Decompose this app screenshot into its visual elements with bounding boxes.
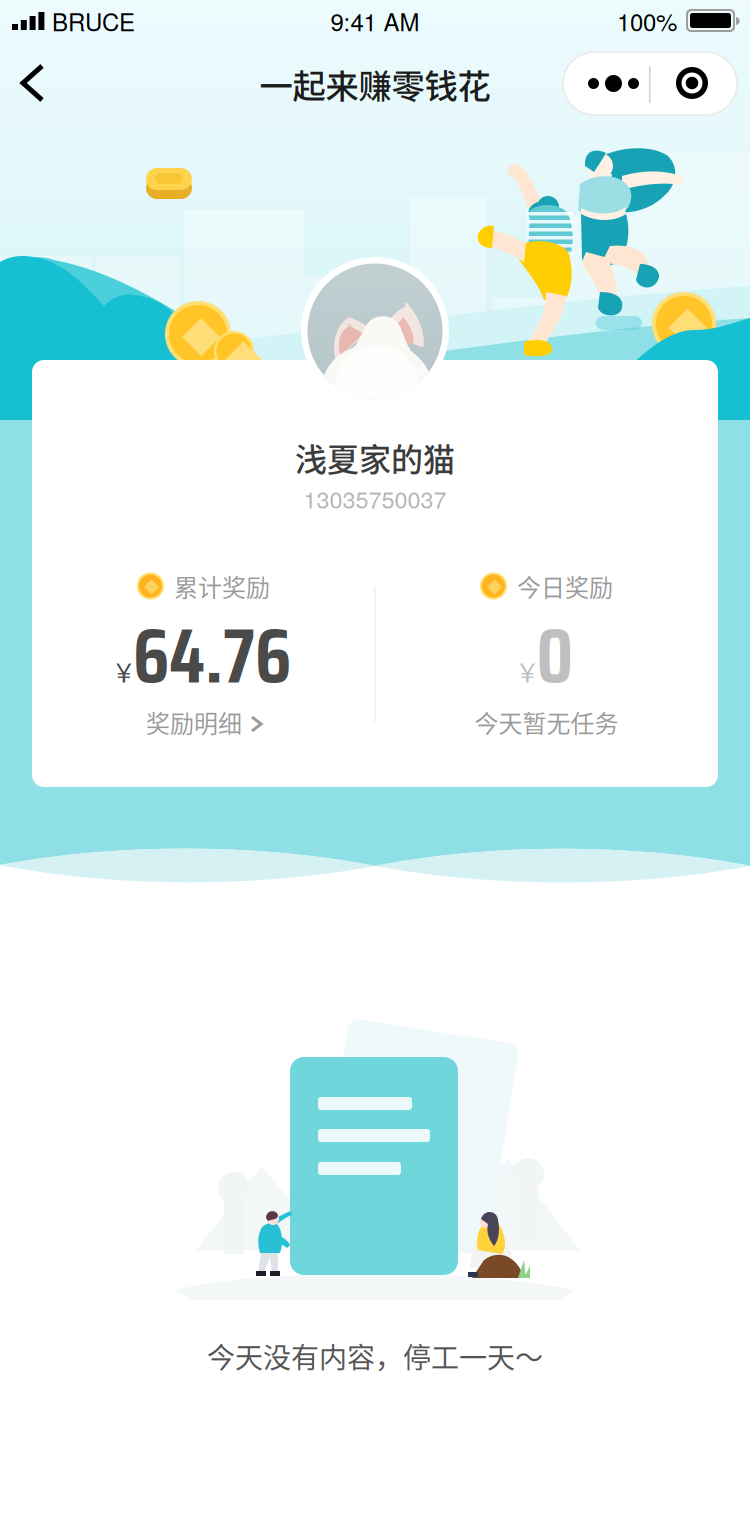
button[interactable]: More options bbox=[563, 52, 737, 115]
staticText: 今日奖励 bbox=[517, 569, 613, 603]
staticText: ¥ bbox=[116, 650, 132, 690]
staticText: 浅夏家的猫 bbox=[295, 434, 455, 481]
button[interactable]: 奖励明细 bbox=[32, 704, 375, 740]
staticText: 0 bbox=[536, 596, 573, 716]
staticText: 一起来赚零钱花 bbox=[259, 60, 490, 108]
staticText: 64.76 bbox=[133, 596, 291, 716]
staticText: 13035750037 bbox=[303, 482, 446, 515]
staticText: BRUCE bbox=[52, 4, 135, 38]
staticText: 9:41 AM bbox=[330, 4, 419, 38]
button[interactable]: Back bbox=[0, 53, 60, 113]
staticText: ¥ bbox=[519, 650, 535, 690]
staticText: 100% bbox=[617, 4, 677, 38]
staticText: 今天暂无任务 bbox=[474, 705, 618, 739]
staticText: 今天没有内容，停工一天～ bbox=[207, 1336, 543, 1376]
staticText: 累计奖励 bbox=[174, 569, 270, 603]
staticText: 奖励明细 bbox=[146, 705, 242, 739]
